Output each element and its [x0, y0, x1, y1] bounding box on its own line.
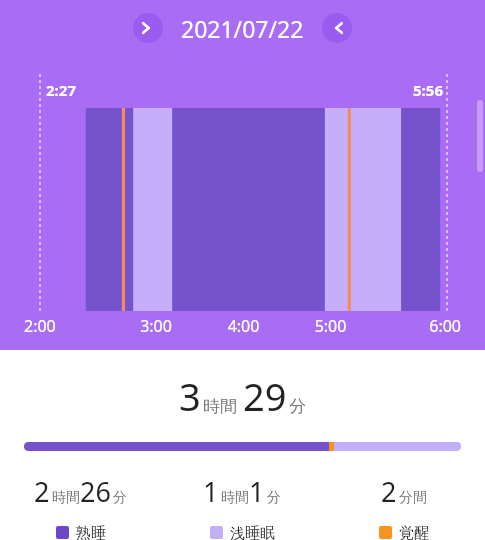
staticText: 1 [203, 473, 219, 510]
staticText: 時間 [52, 489, 80, 507]
staticText: 分間 [399, 489, 427, 507]
staticText: 覚醒 [399, 524, 429, 540]
staticText: 3 [179, 370, 201, 422]
staticText: 1 [249, 473, 265, 510]
staticText: 熟睡 [76, 524, 106, 540]
staticText: 2 [34, 473, 50, 510]
button[interactable]: Next day [322, 13, 352, 43]
staticText: 5:00 [287, 315, 374, 337]
staticText: 5:56 [413, 80, 443, 100]
staticText: 4:00 [200, 315, 287, 337]
staticText: 分 [113, 489, 127, 507]
button[interactable]: 浅睡眠 [161, 524, 323, 540]
staticText: 29 [243, 370, 287, 422]
button[interactable]: 2 [0, 473, 161, 510]
staticText: 分 [267, 489, 281, 507]
button[interactable]: Previous day [133, 13, 163, 43]
staticText: 2:27 [46, 80, 76, 100]
button[interactable]: 1 [161, 473, 323, 510]
button[interactable]: 2 [323, 473, 485, 510]
staticText: 2021/07/22 [181, 13, 304, 44]
staticText: 2:00 [24, 315, 112, 337]
staticText: 6:00 [374, 315, 461, 337]
staticText: 時間 [203, 396, 237, 417]
button[interactable]: 覚醒 [323, 524, 485, 540]
staticText: 2 [381, 473, 397, 510]
staticText: 浅睡眠 [230, 524, 275, 540]
staticText: 分 [289, 396, 306, 417]
staticText: 時間 [221, 489, 249, 507]
staticText: 3:00 [112, 315, 200, 337]
staticText: 26 [80, 473, 111, 510]
button[interactable]: 熟睡 [0, 524, 161, 540]
